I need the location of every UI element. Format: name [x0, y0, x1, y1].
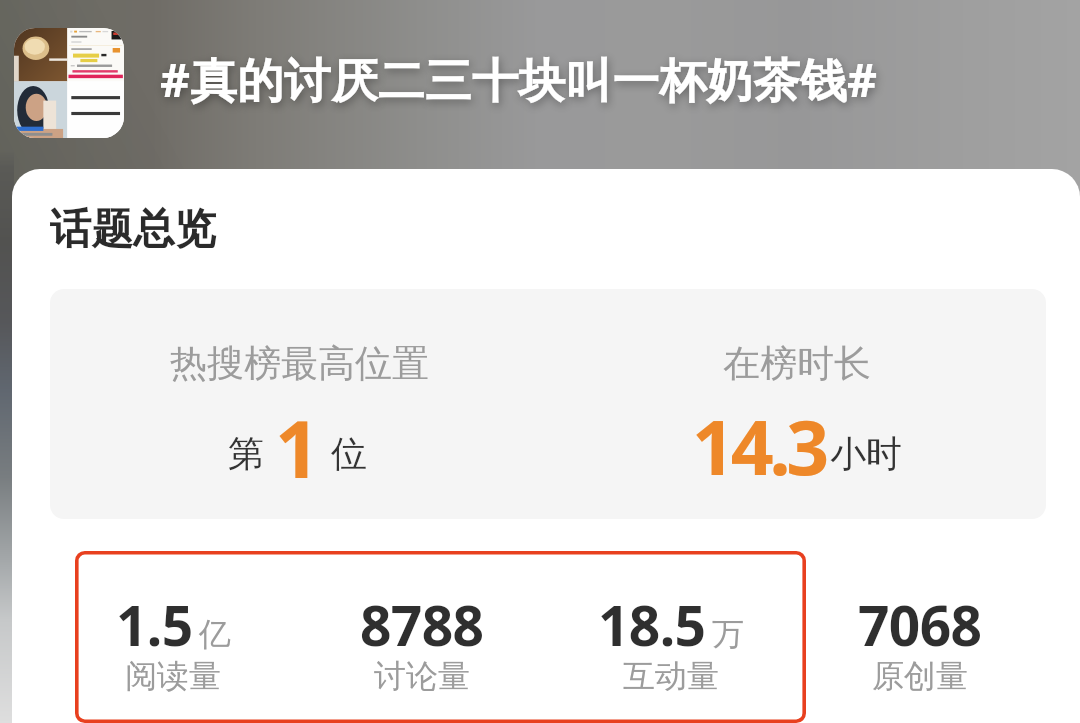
staticText: 8788: [360, 587, 484, 662]
button[interactable]: 18.5: [546, 587, 795, 717]
staticText: 7068: [858, 587, 982, 662]
button[interactable]: 7068: [795, 587, 1044, 717]
staticText: 亿: [199, 614, 231, 654]
button[interactable]: Topic thumbnail: [14, 28, 124, 138]
staticText: 第: [228, 431, 264, 476]
staticText: 话题总览: [50, 203, 216, 255]
staticText: 18.5: [598, 587, 706, 662]
button[interactable]: 在榜时长: [548, 289, 1046, 519]
button[interactable]: 8788: [297, 587, 546, 717]
staticText: 14.3: [692, 395, 825, 497]
staticText: 讨论量: [374, 656, 470, 696]
button[interactable]: #真的讨厌二三十块叫一杯奶茶钱#: [160, 47, 878, 111]
staticText: 位: [331, 431, 367, 476]
staticText: 小时: [830, 431, 902, 476]
staticText: 万: [712, 614, 744, 654]
staticText: 阅读量: [125, 656, 221, 696]
staticText: 1: [275, 395, 320, 501]
button[interactable]: 1.5: [49, 587, 297, 717]
staticText: 互动量: [623, 656, 719, 696]
button[interactable]: Highlighted metrics: [75, 551, 806, 723]
staticText: 热搜榜最高位置: [170, 340, 429, 387]
staticText: 原创量: [872, 656, 968, 696]
button[interactable]: 热搜榜最高位置: [50, 289, 548, 519]
staticText: 在榜时长: [723, 340, 871, 387]
staticText: 1.5: [116, 587, 193, 662]
